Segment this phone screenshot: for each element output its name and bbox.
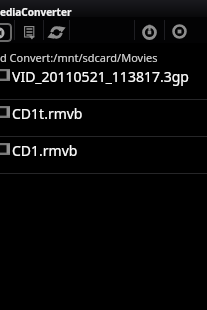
- staticText: CD1t.rmvb: [12, 104, 83, 123]
- button[interactable]: Stop: [165, 19, 194, 41]
- button[interactable]: Back: [0, 23, 12, 42]
- staticText: ediaConverter: [0, 5, 72, 19]
- staticText: CD1.rmvb: [12, 141, 78, 160]
- staticText: d Convert:/mnt/sdcard/Movies: [0, 50, 158, 65]
- button[interactable]: Settings: [135, 19, 164, 41]
- button[interactable]: Refresh: [44, 19, 69, 41]
- button[interactable]: Queue: [15, 19, 43, 41]
- button[interactable]: CD1.rmvb: [0, 137, 207, 174]
- button[interactable]: CD1t.rmvb: [0, 100, 207, 137]
- staticText: VID_20110521_113817.3gp: [12, 67, 189, 86]
- button[interactable]: VID_20110521_113817.3gp: [0, 63, 207, 100]
